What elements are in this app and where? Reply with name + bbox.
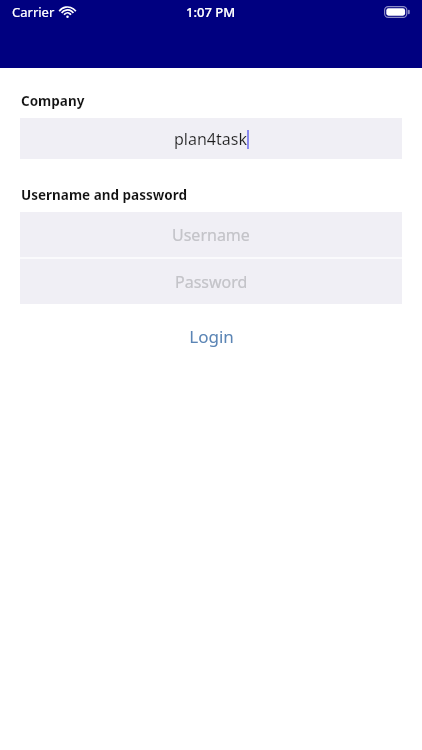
button[interactable]: Login — [0, 319, 422, 353]
button[interactable]: Username — [20, 212, 402, 257]
staticText: plan4task — [174, 128, 247, 150]
other: Battery full — [384, 6, 410, 18]
staticText: Username and password — [21, 186, 188, 204]
staticText: Password — [175, 271, 248, 293]
staticText: 1:07 PM — [186, 3, 236, 21]
staticText: Login — [189, 325, 234, 348]
button[interactable]: Password — [20, 259, 402, 304]
other: Wi-Fi signal — [60, 7, 75, 18]
staticText: Company — [21, 92, 85, 110]
staticText: Carrier — [12, 3, 55, 21]
staticText: Username — [172, 224, 250, 246]
button[interactable]: plan4task — [20, 118, 402, 159]
